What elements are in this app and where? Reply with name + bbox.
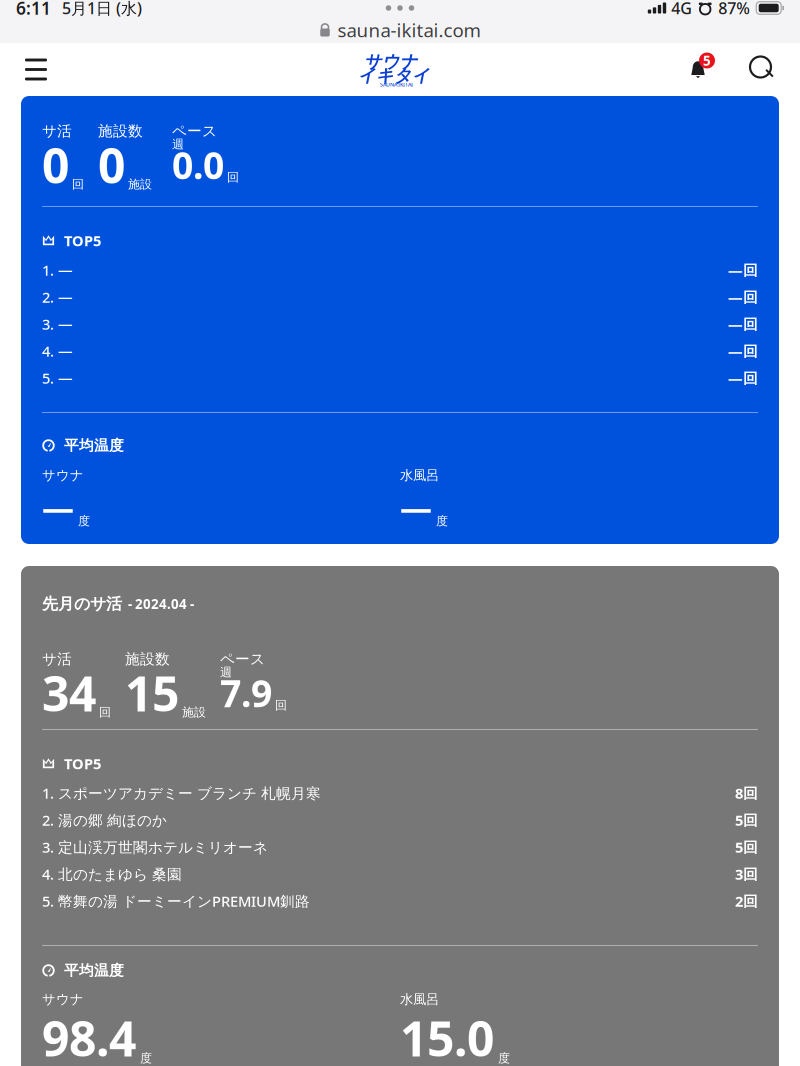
staticText: 3. —	[42, 314, 73, 334]
staticText: ペース	[172, 122, 217, 140]
staticText: 5月1日 (水)	[62, 0, 142, 19]
staticText: サ活	[42, 122, 72, 140]
staticText: TOP5	[64, 754, 101, 773]
staticText: 5回	[735, 837, 758, 857]
staticText: —	[42, 486, 74, 528]
staticText: サ活	[42, 650, 72, 668]
staticText: 4. 北のたまゆら 桑園	[42, 864, 182, 884]
staticText: 5. —	[42, 368, 73, 388]
staticText: 度	[140, 1051, 152, 1066]
staticText: 回	[72, 177, 84, 192]
staticText: 度	[78, 514, 90, 528]
staticText: 回	[227, 170, 239, 184]
staticText: 先月のサ活	[42, 594, 122, 614]
staticText: 施設	[182, 705, 206, 720]
button[interactable]: Search	[742, 45, 784, 94]
staticText: ペース	[220, 650, 265, 668]
staticText: 5	[703, 52, 711, 69]
staticText: 98.4	[42, 1006, 136, 1066]
button[interactable]: Notifications	[678, 45, 718, 94]
staticText: 15.0	[400, 1006, 494, 1066]
staticText: 5回	[735, 810, 758, 830]
staticText: 度	[436, 514, 448, 528]
staticText: 0	[98, 133, 125, 197]
staticText: イキタイ	[358, 65, 430, 86]
staticText: 2. —	[42, 287, 73, 307]
staticText: 水風呂	[400, 991, 439, 1007]
button[interactable]: Menu	[14, 45, 58, 94]
staticText: —回	[728, 260, 758, 280]
staticText: 1. —	[42, 260, 73, 280]
staticText: サウナ	[364, 51, 418, 72]
staticText: 回	[99, 705, 111, 720]
staticText: 回	[275, 698, 287, 712]
staticText: - 2024.04 -	[128, 595, 194, 613]
staticText: sauna-ikitai.com	[337, 18, 480, 42]
staticText: 4. —	[42, 341, 73, 361]
staticText: 平均温度	[64, 961, 124, 979]
staticText: —回	[728, 368, 758, 388]
staticText: 7.9	[220, 668, 272, 718]
staticText: 4G	[671, 0, 692, 19]
staticText: —	[400, 486, 432, 528]
staticText: サウナ	[42, 991, 84, 1007]
button[interactable]: サウナイキタイ home	[340, 43, 460, 96]
staticText: 2. 湯の郷 絢ほのか	[42, 810, 167, 830]
staticText: 8回	[735, 783, 758, 803]
staticText: 87%	[718, 0, 750, 19]
staticText: —回	[728, 341, 758, 361]
staticText: —回	[728, 314, 758, 334]
staticText: SAUNA IKITAI	[380, 81, 413, 88]
staticText: 1. スポーツアカデミー ブランチ 札幌月寒	[42, 783, 321, 803]
staticText: —回	[728, 287, 758, 307]
staticText: TOP5	[64, 231, 101, 250]
staticText: 水風呂	[400, 467, 439, 483]
staticText: 0.0	[172, 140, 224, 190]
staticText: 施設	[128, 177, 152, 192]
staticText: サウナ	[42, 467, 84, 483]
staticText: 6:11	[16, 0, 51, 19]
staticText: 平均温度	[64, 436, 124, 454]
staticText: 15	[125, 661, 179, 725]
staticText: 施設数	[125, 650, 170, 668]
staticText: 2回	[735, 891, 758, 911]
staticText: 度	[498, 1051, 510, 1066]
button[interactable]: sauna-ikitai.com	[0, 20, 800, 40]
staticText: 週	[172, 137, 184, 152]
staticText: 34	[42, 661, 96, 725]
staticText: 週	[220, 665, 232, 680]
staticText: 施設数	[98, 122, 143, 140]
staticText: 0	[42, 133, 69, 197]
staticText: 3回	[735, 864, 758, 884]
staticText: 3. 定山渓万世閣ホテルミリオーネ	[42, 837, 268, 857]
staticText: 5. 幣舞の湯 ドーミーインPREMIUM釧路	[42, 891, 310, 911]
